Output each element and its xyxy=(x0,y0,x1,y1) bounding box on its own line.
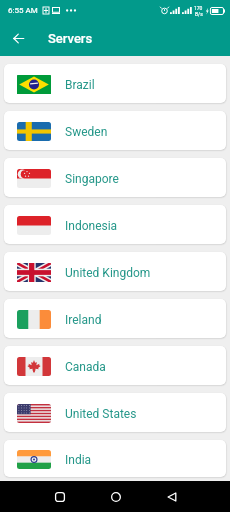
button[interactable]: Singapore xyxy=(4,158,226,197)
staticText: Servers xyxy=(48,31,93,46)
staticText: United States xyxy=(65,407,137,421)
staticText: Brazil xyxy=(65,78,95,92)
button[interactable]: Ireland xyxy=(4,299,226,338)
button[interactable]: Canada xyxy=(4,346,226,385)
staticText: Sweden xyxy=(65,125,108,139)
staticText: B/s xyxy=(195,11,203,17)
button[interactable]: Home xyxy=(101,482,130,511)
button[interactable]: United States xyxy=(4,393,226,432)
button[interactable]: United Kingdom xyxy=(4,252,226,291)
staticText: India xyxy=(65,453,92,467)
button[interactable]: India xyxy=(4,440,226,477)
staticText: 170 xyxy=(194,5,203,11)
staticText: Indonesia xyxy=(65,219,118,233)
button[interactable]: Back xyxy=(0,20,36,56)
staticText: Ireland xyxy=(65,313,102,327)
button[interactable]: Recents xyxy=(45,482,74,511)
button[interactable]: Sweden xyxy=(4,111,226,150)
staticText: United Kingdom xyxy=(65,266,151,280)
button[interactable]: Brazil xyxy=(4,64,226,103)
staticText: 6:55 AM xyxy=(8,6,38,15)
button[interactable]: Indonesia xyxy=(4,205,226,244)
staticText: Canada xyxy=(65,360,106,374)
button[interactable]: Back xyxy=(157,482,186,511)
staticText: Singapore xyxy=(65,172,119,186)
